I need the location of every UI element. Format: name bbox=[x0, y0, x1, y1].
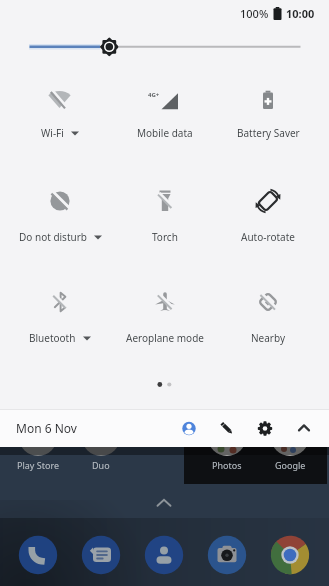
staticText: Mobile data bbox=[137, 126, 193, 140]
button[interactable] bbox=[213, 414, 241, 442]
button[interactable]: Auto-rotate bbox=[216, 185, 320, 247]
staticText: Play Store bbox=[17, 459, 59, 471]
staticText: Auto-rotate bbox=[241, 230, 295, 244]
button[interactable] bbox=[270, 535, 310, 575]
button[interactable] bbox=[144, 535, 184, 575]
button[interactable]: Torch bbox=[113, 185, 217, 247]
button[interactable]: Aeroplane mode bbox=[113, 286, 217, 348]
staticText: Photos bbox=[212, 459, 242, 471]
staticText: Torch bbox=[152, 230, 178, 244]
staticText: Duo bbox=[92, 459, 110, 471]
staticText: Bluetooth bbox=[29, 331, 76, 345]
button[interactable]: Bluetooth bbox=[8, 286, 112, 348]
button[interactable]: Mobile data bbox=[113, 84, 217, 146]
staticText: 10:00 bbox=[286, 6, 315, 21]
button[interactable]: Battery Saver bbox=[216, 84, 320, 146]
staticText: Wi-Fi bbox=[41, 126, 64, 140]
staticText: Nearby bbox=[251, 331, 286, 345]
staticText: Google bbox=[275, 459, 306, 471]
button[interactable] bbox=[290, 414, 318, 442]
button[interactable]: Wi-Fi bbox=[8, 84, 112, 146]
staticText: 4G+ bbox=[148, 91, 160, 99]
button[interactable] bbox=[0, 26, 329, 66]
button[interactable] bbox=[207, 535, 247, 575]
button[interactable] bbox=[251, 414, 279, 442]
staticText: 100% bbox=[240, 6, 269, 21]
button[interactable] bbox=[175, 414, 203, 442]
button[interactable] bbox=[81, 535, 121, 575]
staticText: Battery Saver bbox=[237, 126, 300, 140]
button[interactable] bbox=[18, 535, 58, 575]
staticText: Do not disturb bbox=[19, 230, 87, 244]
button[interactable]: Nearby bbox=[216, 286, 320, 348]
button[interactable]: Do not disturb bbox=[8, 185, 112, 247]
staticText: Mon 6 Nov bbox=[16, 420, 77, 436]
staticText: Aeroplane mode bbox=[126, 331, 204, 345]
